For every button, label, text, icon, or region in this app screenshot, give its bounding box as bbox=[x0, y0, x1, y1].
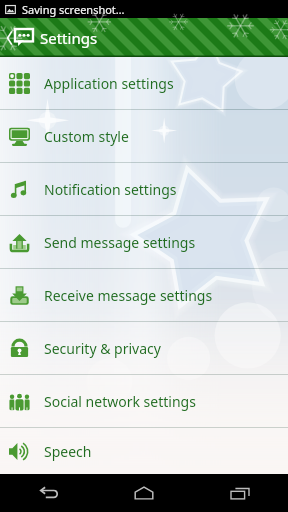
staticText: Saving screenshot… bbox=[22, 2, 125, 17]
button[interactable]: Home bbox=[96, 474, 192, 512]
button[interactable]: Security & privacy bbox=[0, 322, 288, 374]
button[interactable]: Speech bbox=[0, 428, 288, 474]
button[interactable]: Back bbox=[0, 474, 96, 512]
staticText: Custom style bbox=[44, 127, 129, 146]
staticText: Receive message settings bbox=[44, 286, 213, 305]
staticText: Send message settings bbox=[44, 233, 196, 252]
button[interactable]: Recents bbox=[192, 474, 288, 512]
staticText: Security & privacy bbox=[44, 339, 161, 358]
button[interactable]: Social network settings bbox=[0, 375, 288, 427]
staticText: Notification settings bbox=[44, 180, 177, 199]
staticText: Speech bbox=[44, 442, 92, 461]
button[interactable]: Back bbox=[0, 18, 37, 57]
staticText: Application settings bbox=[44, 74, 174, 93]
button[interactable]: Send message settings bbox=[0, 216, 288, 268]
button[interactable]: Receive message settings bbox=[0, 269, 288, 321]
button[interactable]: Custom style bbox=[0, 110, 288, 162]
button[interactable]: Application settings bbox=[0, 57, 288, 109]
staticText: Settings bbox=[40, 28, 98, 48]
button[interactable]: Notification settings bbox=[0, 163, 288, 215]
staticText: Social network settings bbox=[44, 392, 196, 411]
